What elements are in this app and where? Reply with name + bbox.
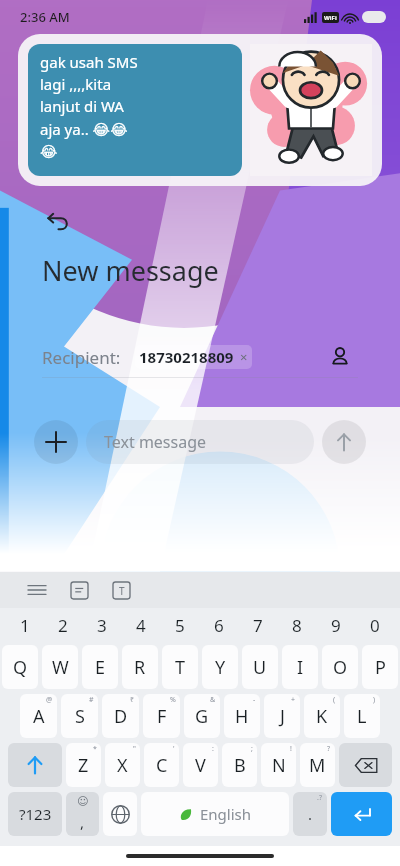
staticText: ': [173, 744, 175, 754]
staticText: Text message: [104, 431, 207, 453]
staticText: ₹: [130, 695, 135, 705]
button[interactable]: 8: [277, 608, 316, 642]
button[interactable]: T: [162, 645, 198, 689]
staticText: G: [195, 704, 209, 729]
button[interactable]: 9: [316, 608, 355, 642]
staticText: 18730218809: [139, 347, 234, 367]
button[interactable]: U: [242, 645, 278, 689]
button[interactable]: Q: [2, 645, 38, 689]
button[interactable]: !: [261, 743, 296, 787]
staticText: W: [52, 655, 69, 680]
button[interactable]: (: [304, 694, 340, 738]
button[interactable]: @: [20, 694, 57, 738]
button[interactable]: +: [264, 694, 300, 738]
staticText: 2: [58, 614, 68, 637]
button[interactable]: :: [183, 743, 218, 787]
button[interactable]: ?123: [8, 792, 62, 836]
button[interactable]: &: [184, 694, 220, 738]
staticText: M: [309, 753, 326, 778]
button[interactable]: -: [224, 694, 260, 738]
button[interactable]: Period: [293, 792, 327, 836]
button[interactable]: *: [66, 743, 101, 787]
button[interactable]: Emoji and comma: [66, 792, 99, 836]
button[interactable]: W: [42, 645, 78, 689]
button[interactable]: gak usah SMS lagi ,,,,kita lanjut di WA …: [18, 34, 382, 186]
staticText: #: [89, 695, 94, 705]
button[interactable]: ?: [300, 743, 335, 787]
button[interactable]: Shift: [8, 743, 62, 787]
staticText: H: [235, 704, 249, 729]
staticText: 9: [331, 614, 341, 637]
button[interactable]: E: [82, 645, 118, 689]
staticText: 8: [292, 614, 302, 637]
button[interactable]: English: [141, 792, 289, 836]
button[interactable]: Backspace: [339, 743, 392, 787]
button[interactable]: P: [362, 645, 398, 689]
button[interactable]: ;: [222, 743, 257, 787]
staticText: Q: [13, 655, 28, 680]
button[interactable]: Back: [38, 202, 78, 242]
button[interactable]: Menu: [20, 573, 54, 607]
button[interactable]: 1: [6, 608, 44, 642]
staticText: &: [210, 695, 216, 705]
button[interactable]: 0: [355, 608, 394, 642]
button[interactable]: ': [144, 743, 179, 787]
button[interactable]: 2: [44, 608, 82, 642]
staticText: V: [195, 753, 206, 778]
button[interactable]: Add attachment: [34, 420, 78, 464]
button[interactable]: #: [61, 694, 98, 738]
staticText: P: [375, 655, 386, 680]
staticText: ;: [251, 744, 253, 754]
button[interactable]: Send: [322, 420, 366, 464]
button[interactable]: Choose contact: [322, 339, 358, 375]
staticText: .?: [317, 793, 322, 803]
staticText: !: [290, 744, 292, 754]
staticText: D: [114, 704, 128, 729]
staticText: ": [133, 744, 136, 754]
staticText: X: [117, 753, 128, 778]
staticText: -: [253, 695, 256, 705]
button[interactable]: R: [122, 645, 158, 689]
button[interactable]: ": [105, 743, 140, 787]
staticText: B: [234, 753, 246, 778]
button[interactable]: 5: [160, 608, 199, 642]
staticText: @: [46, 695, 53, 705]
button[interactable]: ): [344, 694, 380, 738]
staticText: N: [272, 753, 286, 778]
staticText: ☺: [77, 795, 89, 808]
staticText: ×: [240, 348, 248, 366]
button[interactable]: Y: [202, 645, 238, 689]
button[interactable]: 6: [199, 608, 238, 642]
staticText: WiFi: [324, 14, 337, 22]
staticText: T: [175, 655, 186, 680]
button[interactable]: 4: [121, 608, 160, 642]
staticText: U: [253, 655, 267, 680]
staticText: ,: [80, 812, 85, 832]
button[interactable]: ₹: [102, 694, 139, 738]
staticText: 0: [370, 614, 380, 637]
button[interactable]: Text message: [104, 420, 296, 464]
staticText: 5: [175, 614, 185, 637]
staticText: English: [200, 804, 252, 824]
staticText: 6: [214, 614, 224, 637]
button[interactable]: Recipient:: [42, 337, 358, 377]
staticText: R: [134, 655, 146, 680]
button[interactable]: 7: [238, 608, 277, 642]
button[interactable]: %: [143, 694, 180, 738]
staticText: (: [333, 695, 336, 705]
staticText: S: [75, 704, 85, 729]
staticText: K: [316, 704, 328, 729]
button[interactable]: 3: [82, 608, 121, 642]
staticText: ?: [327, 744, 331, 754]
staticText: 2:36 AM: [20, 8, 70, 26]
button[interactable]: Clipboard: [62, 573, 96, 607]
staticText: J: [280, 704, 285, 729]
staticText: gak usah SMS lagi ,,,,kita lanjut di WA …: [40, 52, 138, 160]
staticText: Recipient:: [42, 346, 121, 369]
button[interactable]: I: [282, 645, 318, 689]
button[interactable]: Switch language: [103, 792, 137, 836]
button[interactable]: Enter: [331, 792, 392, 836]
button[interactable]: Text style: [104, 573, 138, 607]
button[interactable]: O: [322, 645, 358, 689]
staticText: T: [119, 584, 125, 598]
